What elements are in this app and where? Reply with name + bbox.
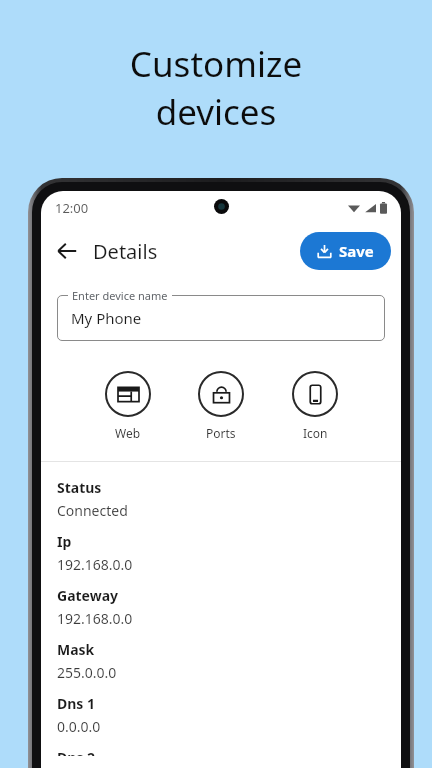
staticText: Status [57,478,102,497]
staticText: Ports [206,425,236,441]
button[interactable]: Ip [57,532,401,586]
button[interactable]: Dns 1 [57,694,401,748]
button[interactable]: Save [300,232,391,270]
staticText: Icon [303,425,328,441]
button[interactable]: Ports [194,367,248,445]
staticText: 255.0.0.0 [57,663,117,682]
staticText: Dns 2 [57,748,96,756]
button[interactable]: Web [101,367,155,445]
button[interactable]: My Phone [57,295,385,341]
staticText: Details [93,238,158,265]
staticText: Dns 1 [57,694,96,713]
button[interactable]: Gateway [57,586,401,640]
staticText: Mask [57,640,95,659]
staticText: Customize devices [0,40,432,135]
staticText: 12:00 [55,199,89,217]
staticText: Gateway [57,586,119,605]
staticText: Ip [57,532,72,551]
staticText: 0.0.0.0 [57,717,101,736]
button[interactable]: Status [57,478,401,532]
button[interactable]: Dns 2 [57,748,401,768]
staticText: My Phone [71,308,142,328]
staticText: 192.168.0.0 [57,609,133,628]
staticText: Connected [57,501,128,520]
staticText: Save [339,241,374,261]
button[interactable]: Mask [57,640,401,694]
staticText: Web [115,425,141,441]
button[interactable]: Icon [288,367,342,445]
button[interactable]: Back [47,231,87,271]
staticText: Enter device name [72,288,168,303]
staticText: 192.168.0.0 [57,555,133,574]
